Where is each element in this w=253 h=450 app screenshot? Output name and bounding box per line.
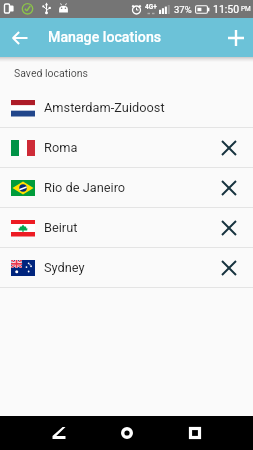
button[interactable]: Rio de Janeiro bbox=[0, 168, 253, 207]
button[interactable]: Home bbox=[110, 416, 144, 450]
button[interactable]: Add location bbox=[221, 23, 251, 53]
staticText: Beirut bbox=[44, 220, 78, 235]
staticText: 11:50 bbox=[213, 3, 240, 15]
staticText: Rio de Janeiro bbox=[44, 180, 126, 195]
button[interactable]: Recents bbox=[178, 416, 212, 450]
button[interactable]: Remove Rio de Janeiro bbox=[213, 172, 245, 204]
button[interactable]: Sydney bbox=[0, 248, 253, 287]
staticText: Sydney bbox=[44, 260, 85, 275]
button[interactable]: Amsterdam-Zuidoost bbox=[0, 88, 253, 127]
staticText: 4G+ bbox=[145, 3, 157, 11]
button[interactable]: Remove Sydney bbox=[213, 252, 245, 284]
button[interactable]: Back bbox=[42, 416, 76, 450]
button[interactable]: Remove Beirut bbox=[213, 212, 245, 244]
staticText: Roma bbox=[44, 140, 78, 155]
button[interactable]: Beirut bbox=[0, 208, 253, 247]
staticText: Amsterdam-Zuidoost bbox=[44, 100, 165, 115]
staticText: Manage locations bbox=[48, 29, 162, 46]
staticText: PM bbox=[241, 5, 251, 13]
button[interactable]: Back bbox=[5, 23, 35, 53]
button[interactable]: Remove Roma bbox=[213, 132, 245, 164]
button[interactable]: Roma bbox=[0, 128, 253, 167]
staticText: 37% bbox=[174, 4, 192, 15]
staticText: Saved locations bbox=[14, 67, 88, 79]
